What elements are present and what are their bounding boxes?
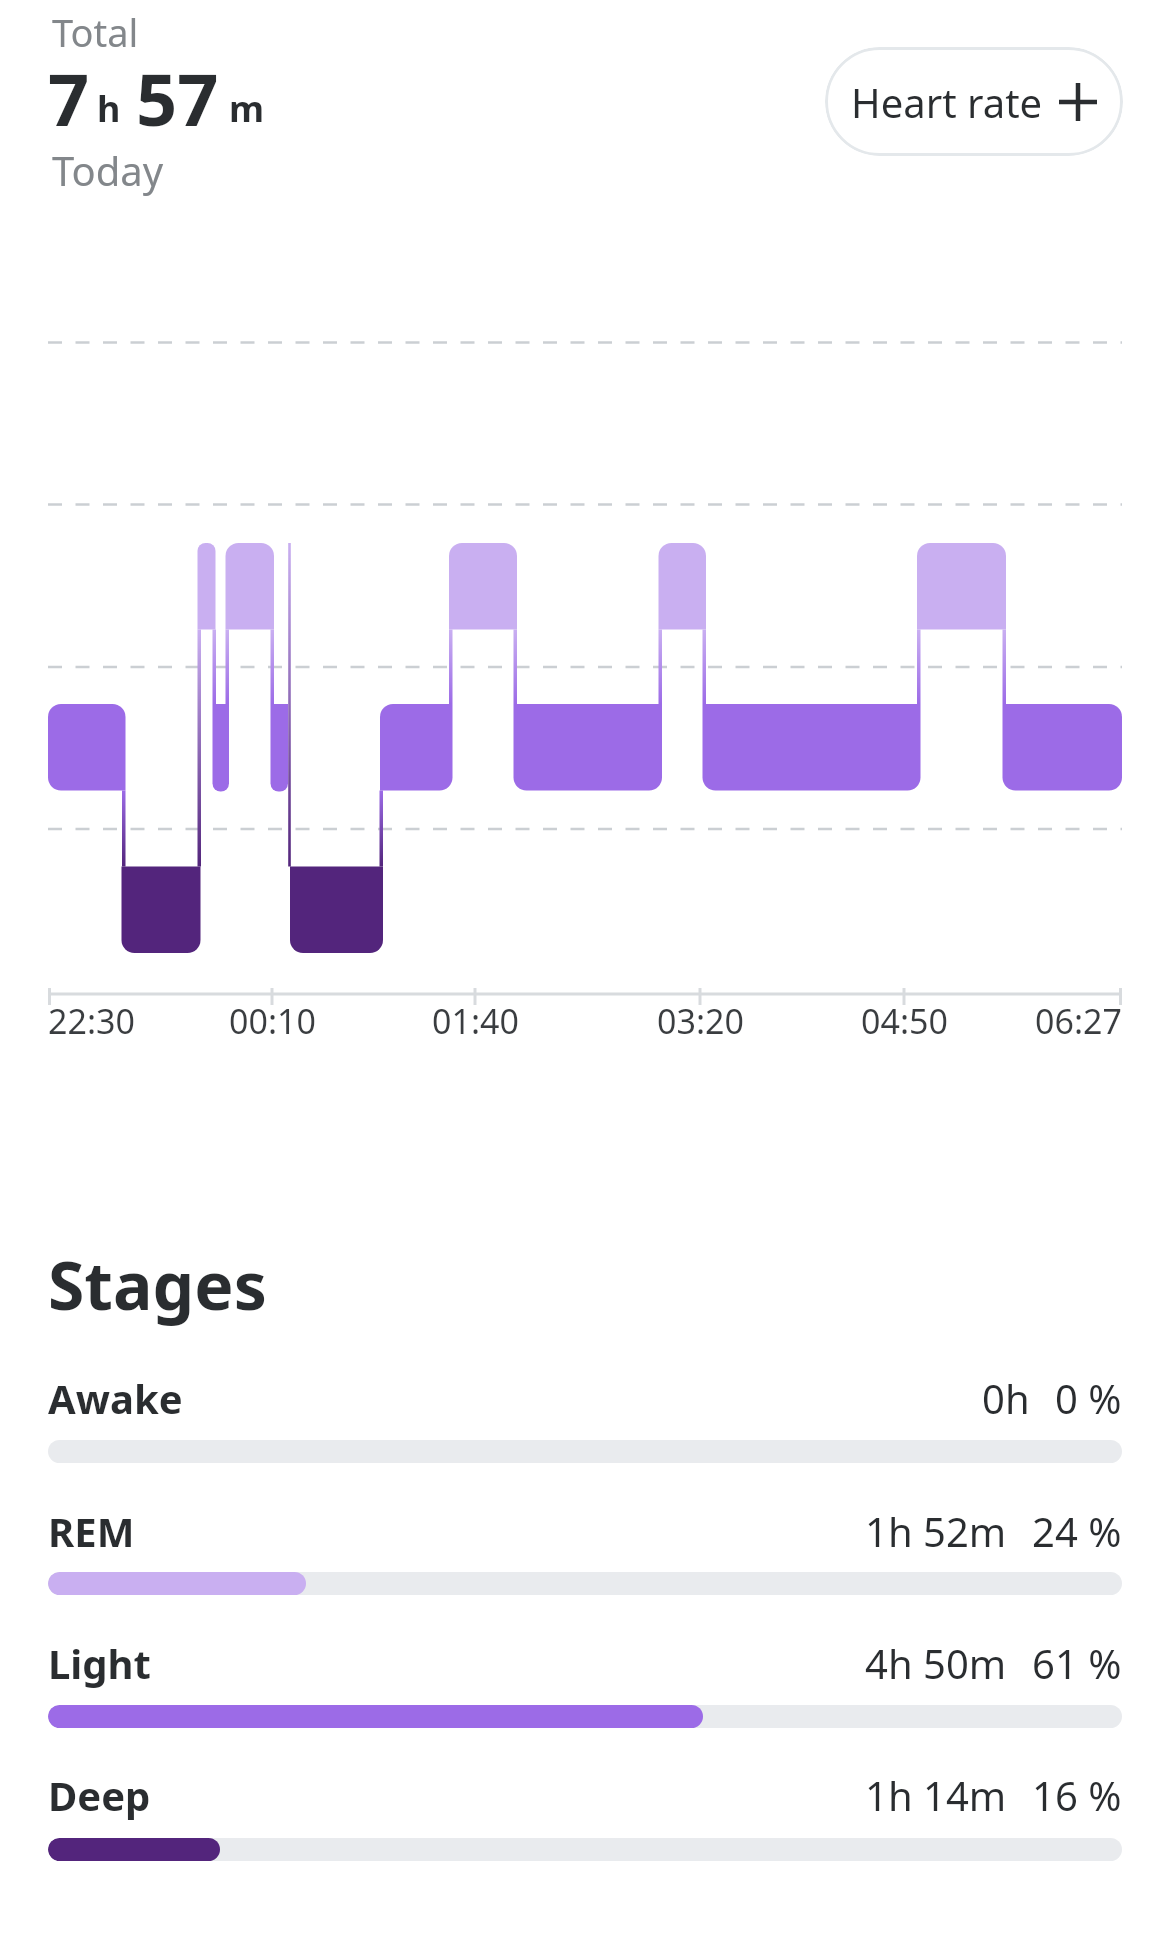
staticText: Today <box>52 143 164 197</box>
button[interactable]: Heart rate <box>825 47 1123 156</box>
staticText: 01:40 <box>432 998 519 1044</box>
staticText: 7 <box>48 49 90 147</box>
staticText: 04:50 <box>861 998 948 1044</box>
staticText: Light <box>48 1636 151 1690</box>
staticText: Total <box>52 6 139 58</box>
staticText: 61 % <box>1032 1636 1122 1686</box>
staticText: Deep <box>48 1768 151 1822</box>
staticText: 57 <box>136 49 219 147</box>
staticText: m <box>229 84 265 133</box>
staticText: Awake <box>48 1371 183 1425</box>
staticText: 00:10 <box>229 998 316 1044</box>
staticText: 16 % <box>1032 1768 1122 1818</box>
staticText: 0 % <box>1055 1371 1122 1421</box>
staticText: 0h <box>982 1371 1030 1421</box>
staticText: 1h 52m <box>865 1504 1007 1554</box>
staticText: 22:30 <box>48 998 135 1044</box>
staticText: 24 % <box>1032 1504 1122 1554</box>
staticText: 03:20 <box>657 998 744 1044</box>
staticText: 1h 14m <box>865 1768 1007 1818</box>
staticText: REM <box>48 1504 135 1558</box>
staticText: Heart rate <box>851 75 1043 129</box>
staticText: Stages <box>48 1239 267 1329</box>
staticText: h <box>97 84 121 133</box>
staticText: 06:27 <box>1035 998 1122 1044</box>
staticText: 4h 50m <box>865 1636 1007 1686</box>
